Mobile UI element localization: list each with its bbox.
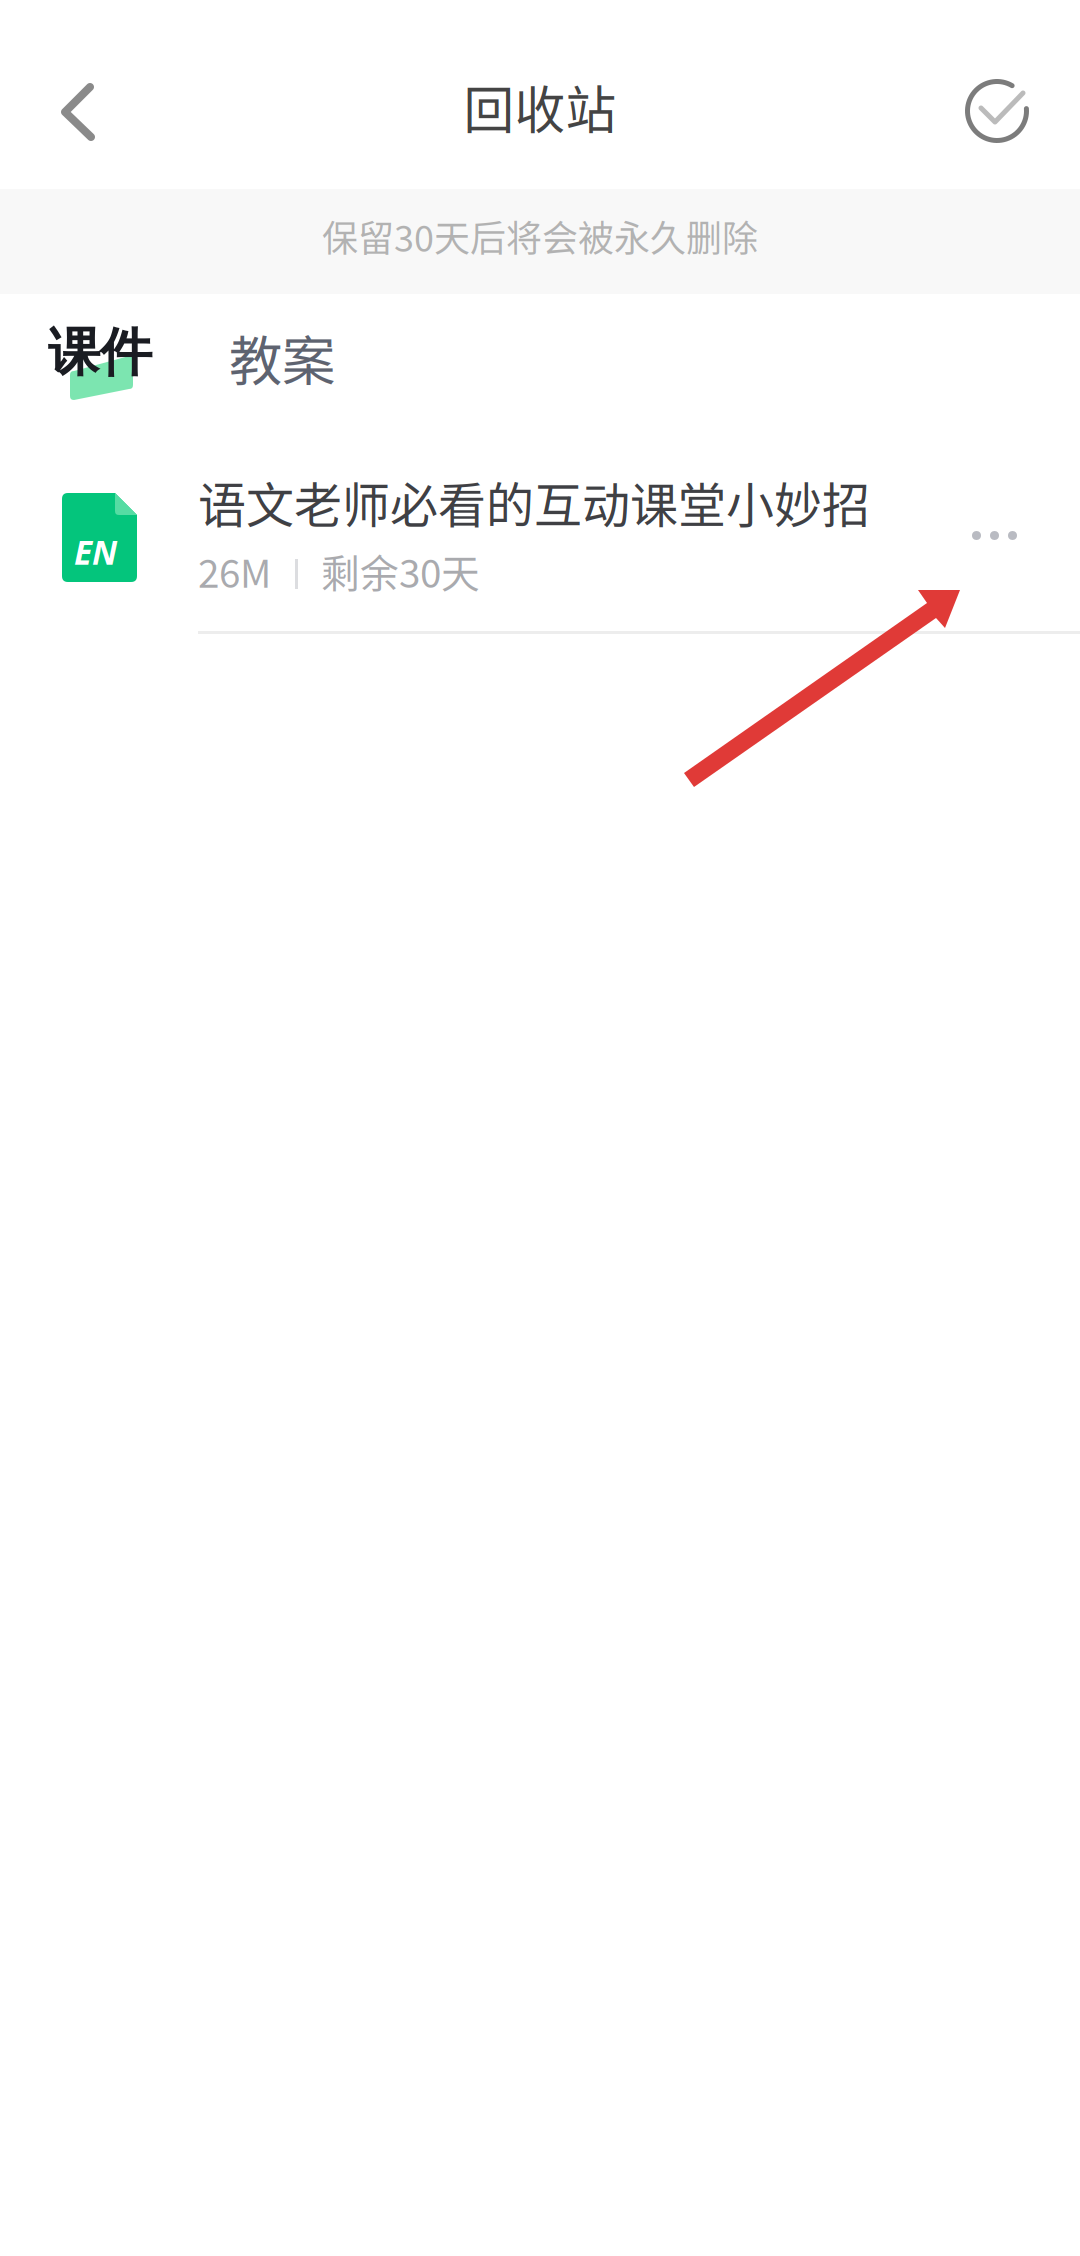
button[interactable]: EN [0, 462, 1080, 652]
button[interactable]: 教案 [229, 314, 379, 424]
staticText: 剩余30天 [321, 543, 480, 599]
staticText: EN [74, 529, 117, 574]
staticText: 课件 [48, 320, 152, 385]
button[interactable]: 课件 [48, 314, 198, 424]
staticText: 语文老师必看的互动课堂小妙招 [198, 467, 870, 536]
staticText: 保留30天后将会被永久删除 [322, 210, 758, 262]
button[interactable]: Select all [937, 51, 1057, 171]
staticText: 回收站 [463, 70, 616, 143]
button[interactable]: Back [18, 52, 138, 172]
staticText: 26M [198, 543, 271, 599]
staticText: 教案 [229, 319, 335, 396]
